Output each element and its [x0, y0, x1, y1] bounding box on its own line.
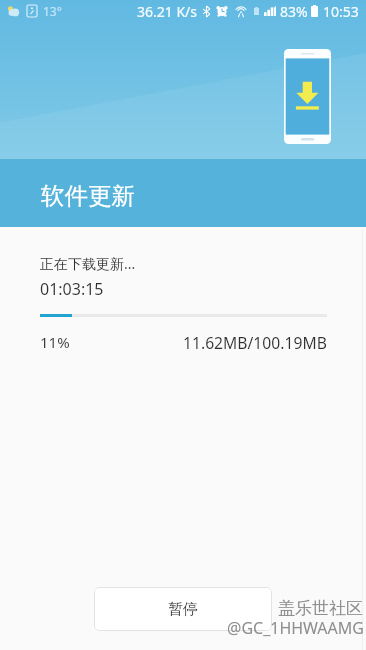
staticText: 36.21 K/s [137, 2, 198, 21]
staticText: 暂停 [168, 600, 198, 619]
staticText: 83% [280, 2, 308, 21]
staticText: 11% [40, 332, 70, 352]
button[interactable]: 暂停 [94, 587, 272, 631]
other: Software update [284, 49, 331, 144]
staticText: 软件更新 [41, 181, 135, 211]
staticText: 01:03:15 [40, 278, 104, 300]
staticText: @GC_1HHWAAMG [227, 617, 364, 639]
staticText: 盖乐世社区 [278, 598, 363, 619]
staticText: 10:53 [323, 2, 359, 21]
staticText: 正在下载更新... [40, 254, 136, 273]
staticText: 11.62MB/100.19MB [183, 332, 327, 353]
staticText: 13° [43, 3, 62, 19]
